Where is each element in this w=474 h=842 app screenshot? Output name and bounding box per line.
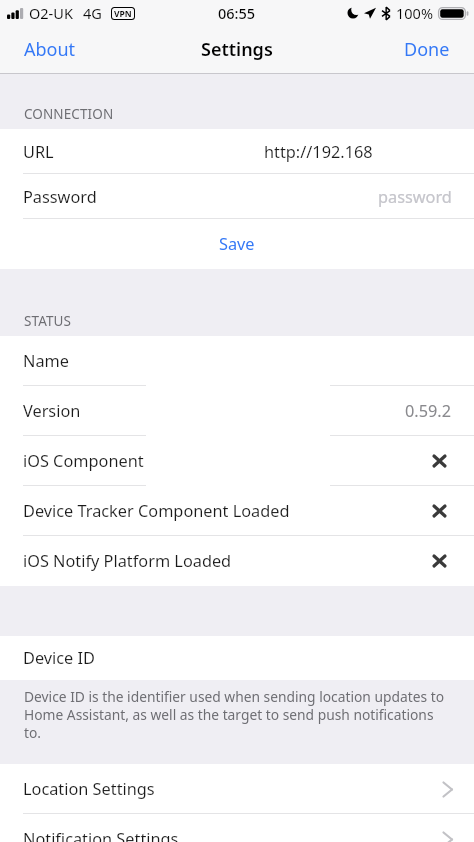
button[interactable]: Device Tracker Component Loaded [0, 486, 474, 536]
staticText: STATUS [24, 312, 72, 330]
other: Open Location Settings [443, 782, 452, 797]
button[interactable]: Done [380, 27, 474, 72]
staticText: Password [23, 186, 97, 208]
other: Not loaded [434, 456, 445, 466]
staticText: 4G [83, 3, 102, 23]
staticText: CONNECTION [24, 105, 114, 123]
staticText: About [24, 37, 76, 62]
staticText: 06:55 [218, 3, 256, 23]
staticText: Version [23, 400, 81, 422]
staticText: iOS Notify Platform Loaded [23, 550, 434, 572]
other: Not loaded [434, 506, 445, 516]
button[interactable]: URL [0, 129, 474, 174]
button[interactable]: Location Settings [0, 764, 474, 814]
staticText: 100% [396, 3, 433, 23]
button[interactable]: Notification Settings [0, 814, 474, 842]
staticText: URL [23, 141, 54, 163]
staticText: Device ID is the identifier used when se… [24, 687, 454, 742]
button[interactable]: Version [0, 386, 474, 436]
staticText: Save [219, 233, 255, 255]
button[interactable]: Password [0, 174, 474, 219]
staticText: http://192.168 [264, 141, 373, 163]
staticText: Device Tracker Component Loaded [23, 500, 434, 522]
staticText: Done [404, 37, 450, 62]
staticText: Name [23, 350, 69, 372]
staticText: Location Settings [23, 778, 443, 800]
staticText: iOS Component [23, 450, 434, 472]
button[interactable]: Device ID [0, 636, 474, 680]
button[interactable]: Name [0, 336, 474, 386]
other: Open Notification Settings [443, 832, 452, 842]
button[interactable]: iOS Component [0, 436, 474, 486]
staticText: password [378, 186, 452, 208]
other: Not loaded [434, 556, 445, 566]
staticText: VPN [114, 8, 132, 19]
button[interactable]: iOS Notify Platform Loaded [0, 536, 474, 586]
staticText: Device ID [23, 647, 95, 669]
button[interactable]: Save [0, 219, 474, 269]
staticText: 0.59.2 [405, 400, 452, 422]
staticText: Settings [201, 37, 273, 62]
staticText: Notification Settings [23, 828, 443, 842]
button[interactable]: About [0, 27, 100, 72]
staticText: O2-UK [29, 3, 73, 23]
